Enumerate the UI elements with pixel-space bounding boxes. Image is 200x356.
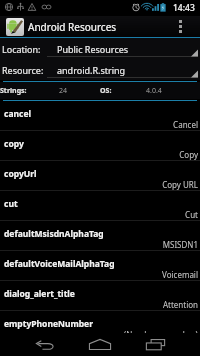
button[interactable]: Recent apps	[137, 333, 173, 356]
staticText: emptyPhoneNumber	[4, 318, 93, 330]
button[interactable]: emptyPhoneNumber	[0, 311, 200, 333]
button[interactable]: cancel	[0, 101, 200, 130]
button[interactable]: Back	[27, 333, 63, 356]
staticText: Public Resources	[57, 43, 129, 55]
staticText: 4.0.4	[146, 86, 162, 96]
button[interactable]: android.R.string	[47, 59, 198, 80]
button[interactable]: dialog_alert_title	[0, 281, 200, 310]
staticText: Cut	[185, 209, 198, 220]
staticText: dialog_alert_title	[4, 288, 75, 300]
button[interactable]: More options	[173, 16, 187, 37]
staticText: Resource:	[2, 64, 44, 76]
staticText: OS:	[100, 86, 112, 96]
button[interactable]: copyUrl	[0, 161, 200, 190]
staticText: cut	[4, 198, 18, 210]
staticText: Strings:	[0, 86, 27, 96]
staticText: Copy URL	[162, 179, 198, 190]
button[interactable]: defaultVoiceMailAlphaTag	[0, 251, 200, 280]
staticText: (No phone number)	[123, 329, 198, 333]
staticText: copy	[4, 138, 24, 150]
button[interactable]: defaultMsisdnAlphaTag	[0, 221, 200, 250]
staticText: Voicemail	[162, 269, 198, 280]
button[interactable]: cut	[0, 191, 200, 220]
staticText: 24	[59, 86, 68, 96]
staticText: MSISDN1	[162, 239, 198, 250]
button[interactable]: copy	[0, 131, 200, 160]
staticText: Cancel	[173, 119, 198, 130]
staticText: 14:43	[173, 2, 195, 14]
button[interactable]: Home	[82, 333, 118, 356]
staticText: defaultMsisdnAlphaTag	[4, 228, 104, 240]
staticText: Attention	[162, 299, 198, 310]
staticText: android.R.string	[57, 64, 126, 76]
staticText: Android Resources	[28, 20, 117, 34]
button[interactable]: Public Resources	[47, 38, 198, 59]
staticText: defaultVoiceMailAlphaTag	[4, 258, 115, 270]
staticText: Location:	[2, 43, 41, 55]
staticText: copyUrl	[4, 168, 37, 180]
staticText: cancel	[4, 108, 31, 120]
staticText: Copy	[179, 149, 198, 160]
